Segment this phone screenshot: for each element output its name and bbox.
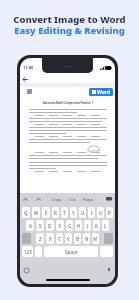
staticText: F <box>59 223 62 229</box>
button[interactable]: A <box>26 220 34 231</box>
button[interactable]: Copy <box>52 197 62 202</box>
staticText: G <box>68 223 72 229</box>
button[interactable]: Back <box>23 77 28 82</box>
staticText: N <box>85 236 89 242</box>
staticText: T <box>63 210 66 216</box>
button[interactable]: 123 <box>22 246 33 257</box>
button[interactable]: O <box>97 207 104 218</box>
staticText: Word <box>97 89 111 96</box>
staticText: W <box>34 210 39 216</box>
button[interactable]: D <box>46 220 54 231</box>
button[interactable]: Emoji <box>24 268 29 273</box>
button[interactable]: I <box>88 207 95 218</box>
button[interactable]: K <box>93 220 100 231</box>
button[interactable]: Z <box>36 233 44 244</box>
staticText: American Math Competition Practice 1 <box>29 101 107 105</box>
staticText: Q <box>24 210 28 216</box>
staticText: O <box>99 210 103 216</box>
staticText: C <box>58 236 61 242</box>
button[interactable]: Y <box>70 207 77 218</box>
staticText: B <box>76 236 79 242</box>
button[interactable]: Document <box>27 89 32 94</box>
button[interactable]: Undo <box>23 197 28 202</box>
staticText: X <box>49 236 52 242</box>
button[interactable]: E <box>42 207 50 218</box>
button[interactable]: S <box>36 220 44 231</box>
button[interactable]: R <box>52 207 59 218</box>
staticText: S <box>39 223 42 229</box>
staticText: 11:40 <box>23 65 34 70</box>
button[interactable]: P <box>106 207 113 218</box>
staticText: U <box>81 210 85 216</box>
button[interactable]: M <box>92 233 99 244</box>
staticText: E <box>45 210 48 216</box>
staticText: V <box>67 236 70 242</box>
button[interactable]: X <box>46 233 54 244</box>
button[interactable]: Redo <box>36 197 41 202</box>
staticText: I <box>91 210 93 216</box>
button[interactable]: B <box>74 233 81 244</box>
button[interactable]: F <box>56 220 64 231</box>
button[interactable]: Space <box>44 246 98 257</box>
button[interactable]: C <box>56 233 63 244</box>
button[interactable] <box>100 246 113 257</box>
staticText: A <box>29 223 32 229</box>
staticText: H <box>77 223 81 229</box>
staticText: Space <box>65 249 78 255</box>
staticText: R <box>54 210 57 216</box>
button[interactable]: Shift <box>22 233 31 244</box>
staticText: J <box>87 223 89 229</box>
button[interactable]: Hide keyboard <box>106 197 112 202</box>
staticText: P <box>108 210 111 216</box>
button[interactable]: Word <box>89 88 113 96</box>
button[interactable]: U <box>79 207 86 218</box>
button[interactable]: Cut <box>69 197 76 202</box>
button[interactable]: Paste <box>83 197 94 202</box>
staticText: M <box>93 236 98 242</box>
staticText: 123 <box>24 249 32 255</box>
staticText: Convert Image to Word <box>0 13 139 26</box>
button[interactable]: N <box>83 233 90 244</box>
staticText: Y <box>72 210 75 216</box>
button[interactable] <box>35 246 42 257</box>
button[interactable]: L <box>102 220 109 231</box>
staticText: Z <box>39 236 42 242</box>
button[interactable]: T <box>61 207 68 218</box>
button[interactable]: J <box>84 220 91 231</box>
button[interactable]: W <box>32 207 40 218</box>
button[interactable]: V <box>65 233 72 244</box>
staticText: L <box>104 223 107 229</box>
button[interactable]: G <box>66 220 73 231</box>
staticText: K <box>95 223 98 229</box>
button[interactable]: Microphone <box>107 268 111 273</box>
button[interactable]: Backspace <box>104 233 113 244</box>
staticText: D <box>48 223 52 229</box>
button[interactable]: Q <box>22 207 30 218</box>
button[interactable]: H <box>75 220 82 231</box>
staticText: Easy Editing & Revising <box>0 24 139 37</box>
